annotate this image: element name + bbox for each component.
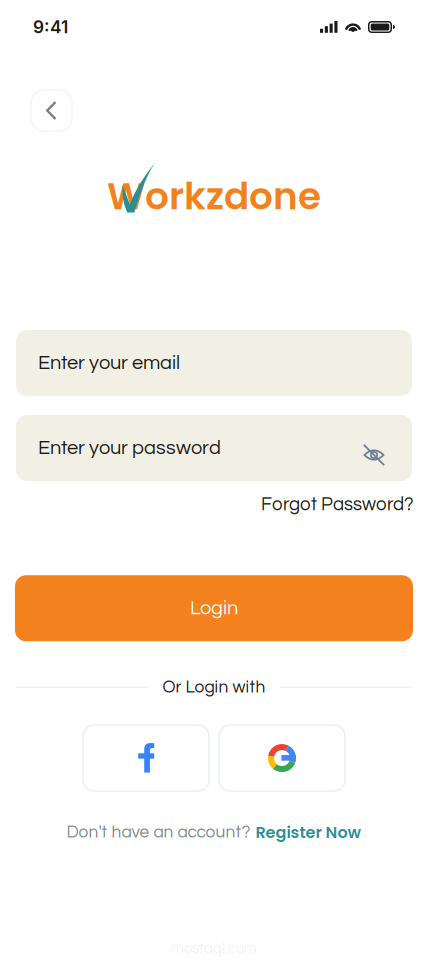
staticText: Enter your password [38, 438, 221, 458]
staticText: Register Now [255, 821, 361, 843]
staticText: Forgot Password? [261, 495, 414, 514]
staticText: Don't have an account? [66, 823, 250, 841]
button[interactable]: Continue with Google [219, 725, 345, 791]
staticText: Login [190, 598, 238, 618]
button[interactable]: Back [31, 90, 72, 131]
button[interactable]: Forgot Password? [261, 495, 414, 514]
staticText: 9:41 [33, 16, 68, 37]
staticText: Enter your email [38, 353, 180, 373]
staticText: Or Login with [162, 678, 265, 696]
button[interactable]: Continue with Facebook [83, 725, 209, 791]
button[interactable]: Login [15, 575, 413, 641]
button[interactable]: Show password [363, 430, 390, 466]
staticText: mostaql.com [171, 941, 257, 956]
button[interactable]: Don't have an account? [66, 821, 361, 843]
staticText: Workzdone [107, 170, 321, 222]
